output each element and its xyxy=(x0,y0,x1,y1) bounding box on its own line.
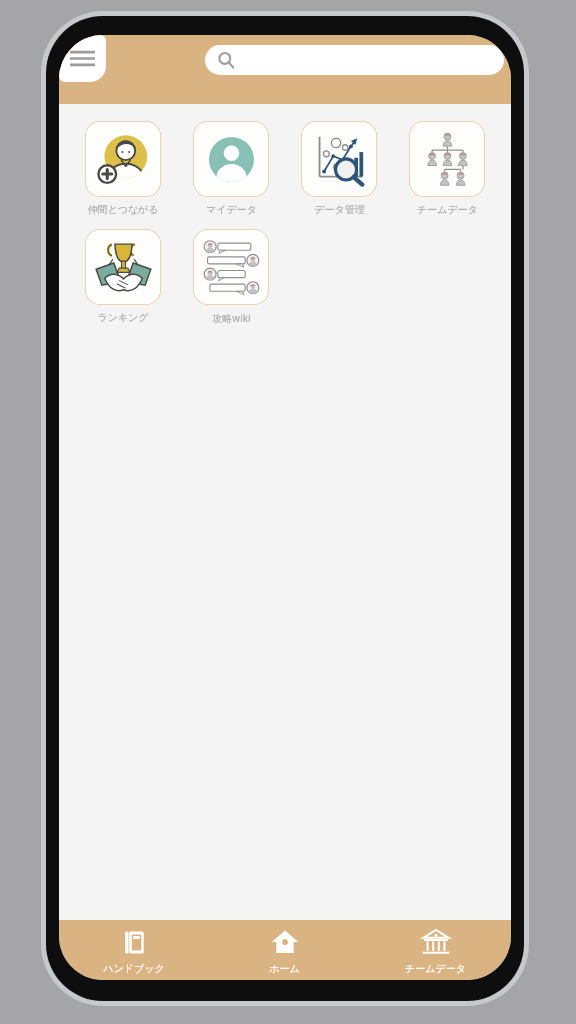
staticText: マイデータ xyxy=(206,203,257,216)
button[interactable]: 仲間とつながる xyxy=(85,121,161,216)
staticText: チームデータ xyxy=(405,962,466,975)
button[interactable]: Team data xyxy=(360,927,511,980)
button[interactable]: データ管理 xyxy=(301,121,377,216)
staticText: 攻略wiki xyxy=(212,311,251,325)
button[interactable]: Menu xyxy=(59,35,106,82)
staticText: チームデータ xyxy=(417,203,478,216)
button[interactable]: マイデータ xyxy=(193,121,269,216)
button[interactable]: ランキング xyxy=(85,229,161,324)
staticText: 仲間とつながる xyxy=(87,203,159,216)
staticText: ハンドブック xyxy=(103,962,165,975)
staticText: ランキング xyxy=(97,311,149,324)
button[interactable]: チームデータ xyxy=(409,121,485,216)
staticText: ホーム xyxy=(269,962,300,975)
button[interactable]: Handbook xyxy=(59,927,209,980)
button[interactable]: Search xyxy=(205,45,504,75)
button[interactable]: 攻略wiki xyxy=(193,229,269,325)
button[interactable]: Home xyxy=(209,927,360,980)
staticText: データ管理 xyxy=(314,203,365,216)
